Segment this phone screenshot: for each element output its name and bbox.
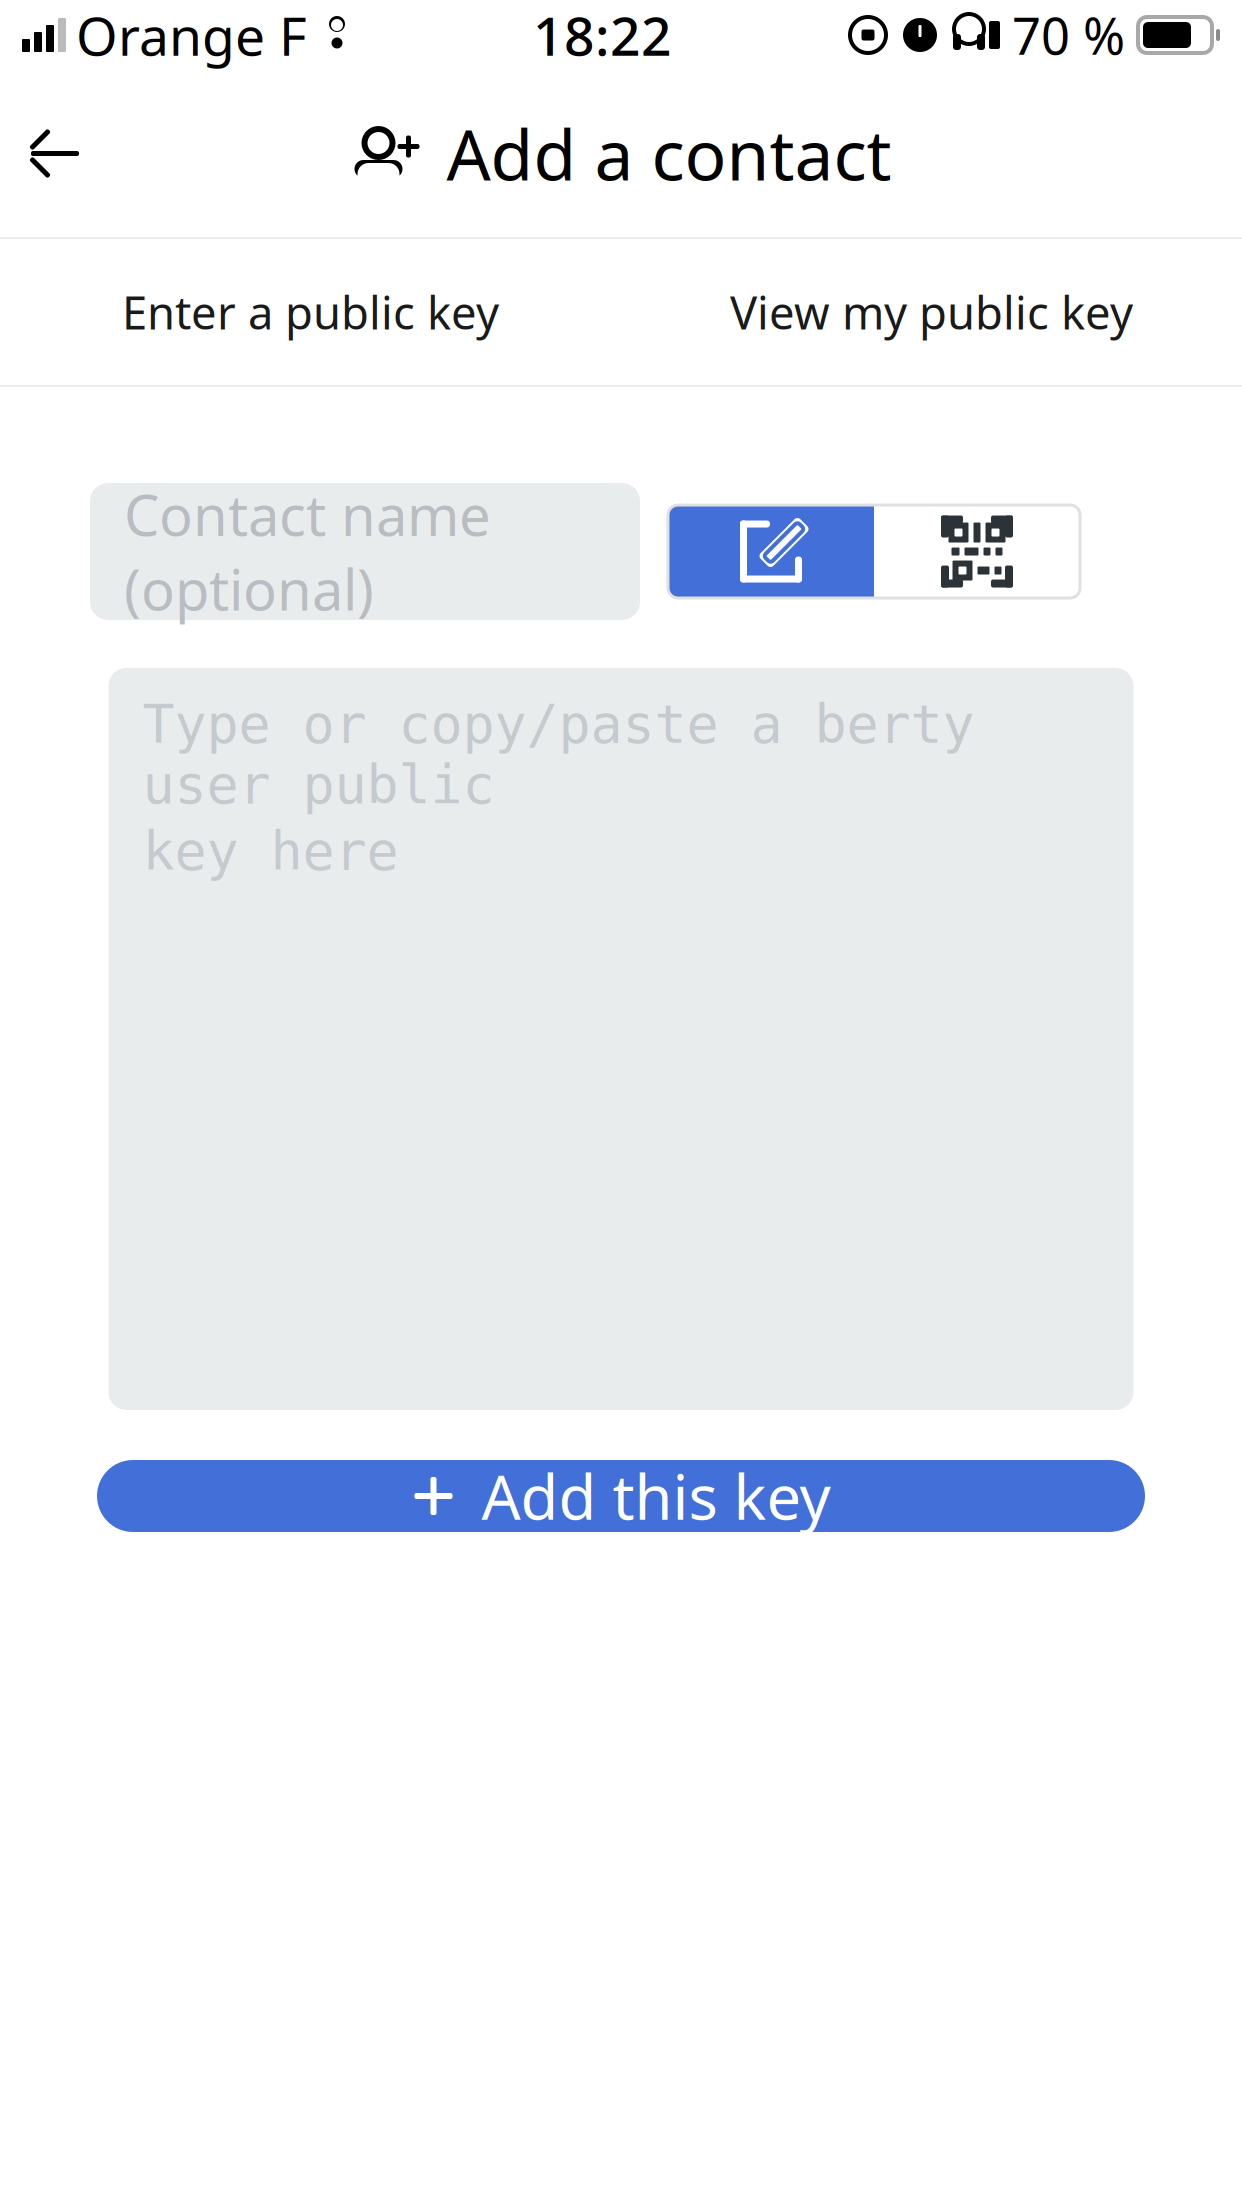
staticText: 70 %: [1012, 1, 1125, 69]
button[interactable]: View my public key: [621, 239, 1242, 385]
staticText: View my public key: [730, 282, 1133, 342]
button[interactable]: Contact name (optional): [90, 483, 640, 620]
button[interactable]: Scan QR code: [874, 505, 1080, 598]
staticText: 18:22: [533, 0, 672, 70]
button[interactable]: Enter a public key: [0, 239, 621, 385]
staticText: Orange F: [76, 0, 307, 70]
staticText: Add this key: [481, 1455, 830, 1537]
button[interactable]: Enter key manually: [668, 505, 874, 598]
staticText: Type or copy/paste a berty user public: [142, 694, 974, 815]
staticText: key here: [142, 821, 398, 882]
staticText: Contact name (optional): [124, 477, 491, 626]
button[interactable]: Add this key: [97, 1460, 1145, 1532]
staticText: Add a contact: [446, 107, 891, 200]
button[interactable]: Type or copy/paste a berty user public: [108, 668, 1133, 1410]
staticText: Enter a public key: [122, 282, 499, 342]
button[interactable]: Back: [0, 98, 110, 208]
